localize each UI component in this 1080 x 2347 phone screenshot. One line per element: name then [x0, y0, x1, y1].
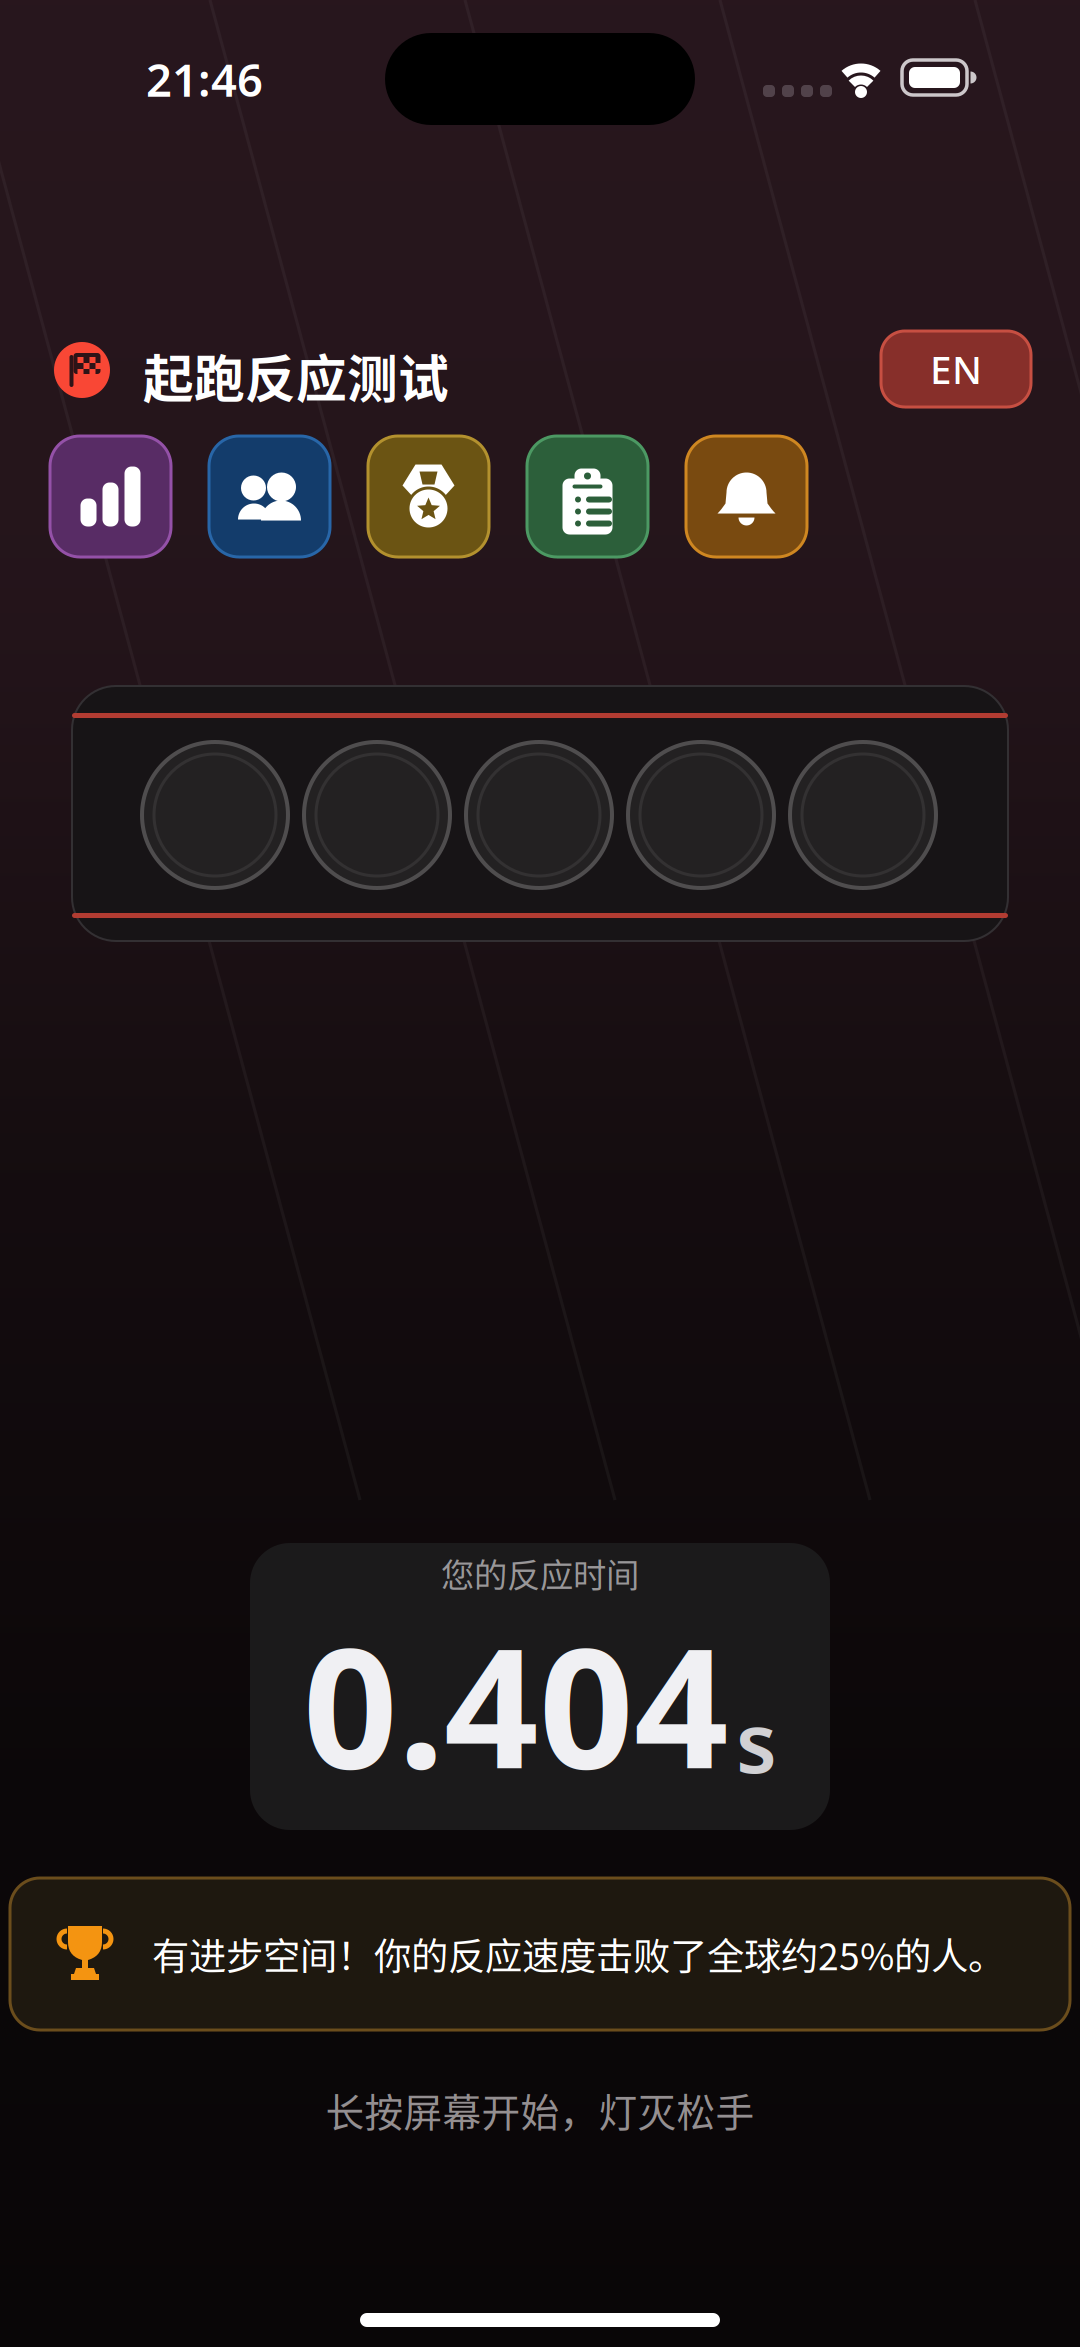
button[interactable]: History: [527, 436, 648, 557]
button[interactable]: Switch language: [881, 331, 1031, 407]
button[interactable]: Achievements: [368, 436, 489, 557]
staticText: 有进步空间！你的反应速度击败了全球约25%的人。: [152, 1927, 1005, 1981]
staticText: 长按屏幕开始，灯灭松手: [325, 2082, 754, 2138]
button[interactable]: Reminders: [686, 436, 807, 557]
staticText: s: [736, 1686, 777, 1796]
staticText: 您的反应时间: [441, 1549, 639, 1597]
button[interactable]: Friends: [209, 436, 330, 557]
button[interactable]: Stats: [50, 436, 171, 557]
staticText: EN: [930, 343, 982, 395]
staticText: 21:46: [146, 49, 263, 109]
staticText: 0.404: [303, 1594, 729, 1814]
staticText: 起跑反应测试: [143, 339, 449, 412]
